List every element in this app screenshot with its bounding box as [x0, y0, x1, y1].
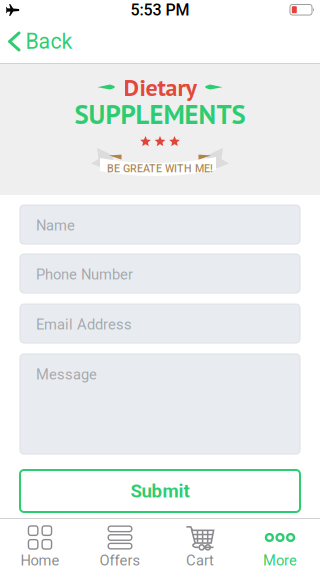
staticText: Name — [36, 217, 75, 234]
staticText: SUPPLEMENTS — [74, 97, 245, 131]
button[interactable]: Phone Number — [20, 254, 300, 293]
button[interactable]: Name — [20, 205, 300, 244]
button[interactable]: Message — [20, 354, 300, 454]
staticText: Submit — [130, 480, 189, 502]
staticText: 5:53 PM — [130, 1, 189, 19]
button[interactable]: Offers — [80, 519, 160, 568]
button[interactable]: Submit — [20, 470, 300, 512]
staticText: BE GREATE WITH ME! — [107, 162, 213, 175]
staticText: More — [263, 552, 297, 568]
button[interactable]: Home — [0, 519, 80, 568]
staticText: Home — [20, 552, 59, 568]
button[interactable]: Cart — [160, 519, 240, 568]
button[interactable]: Back — [0, 20, 82, 63]
button[interactable]: More — [240, 519, 320, 568]
staticText: Cart — [186, 552, 214, 568]
button[interactable]: Email Address — [20, 304, 300, 343]
staticText: Email Address — [36, 316, 132, 333]
staticText: Offers — [99, 552, 140, 568]
staticText: Message — [36, 366, 97, 383]
staticText: Phone Number — [36, 266, 133, 283]
staticText: Dietary — [123, 71, 196, 103]
staticText: Back — [25, 29, 72, 54]
